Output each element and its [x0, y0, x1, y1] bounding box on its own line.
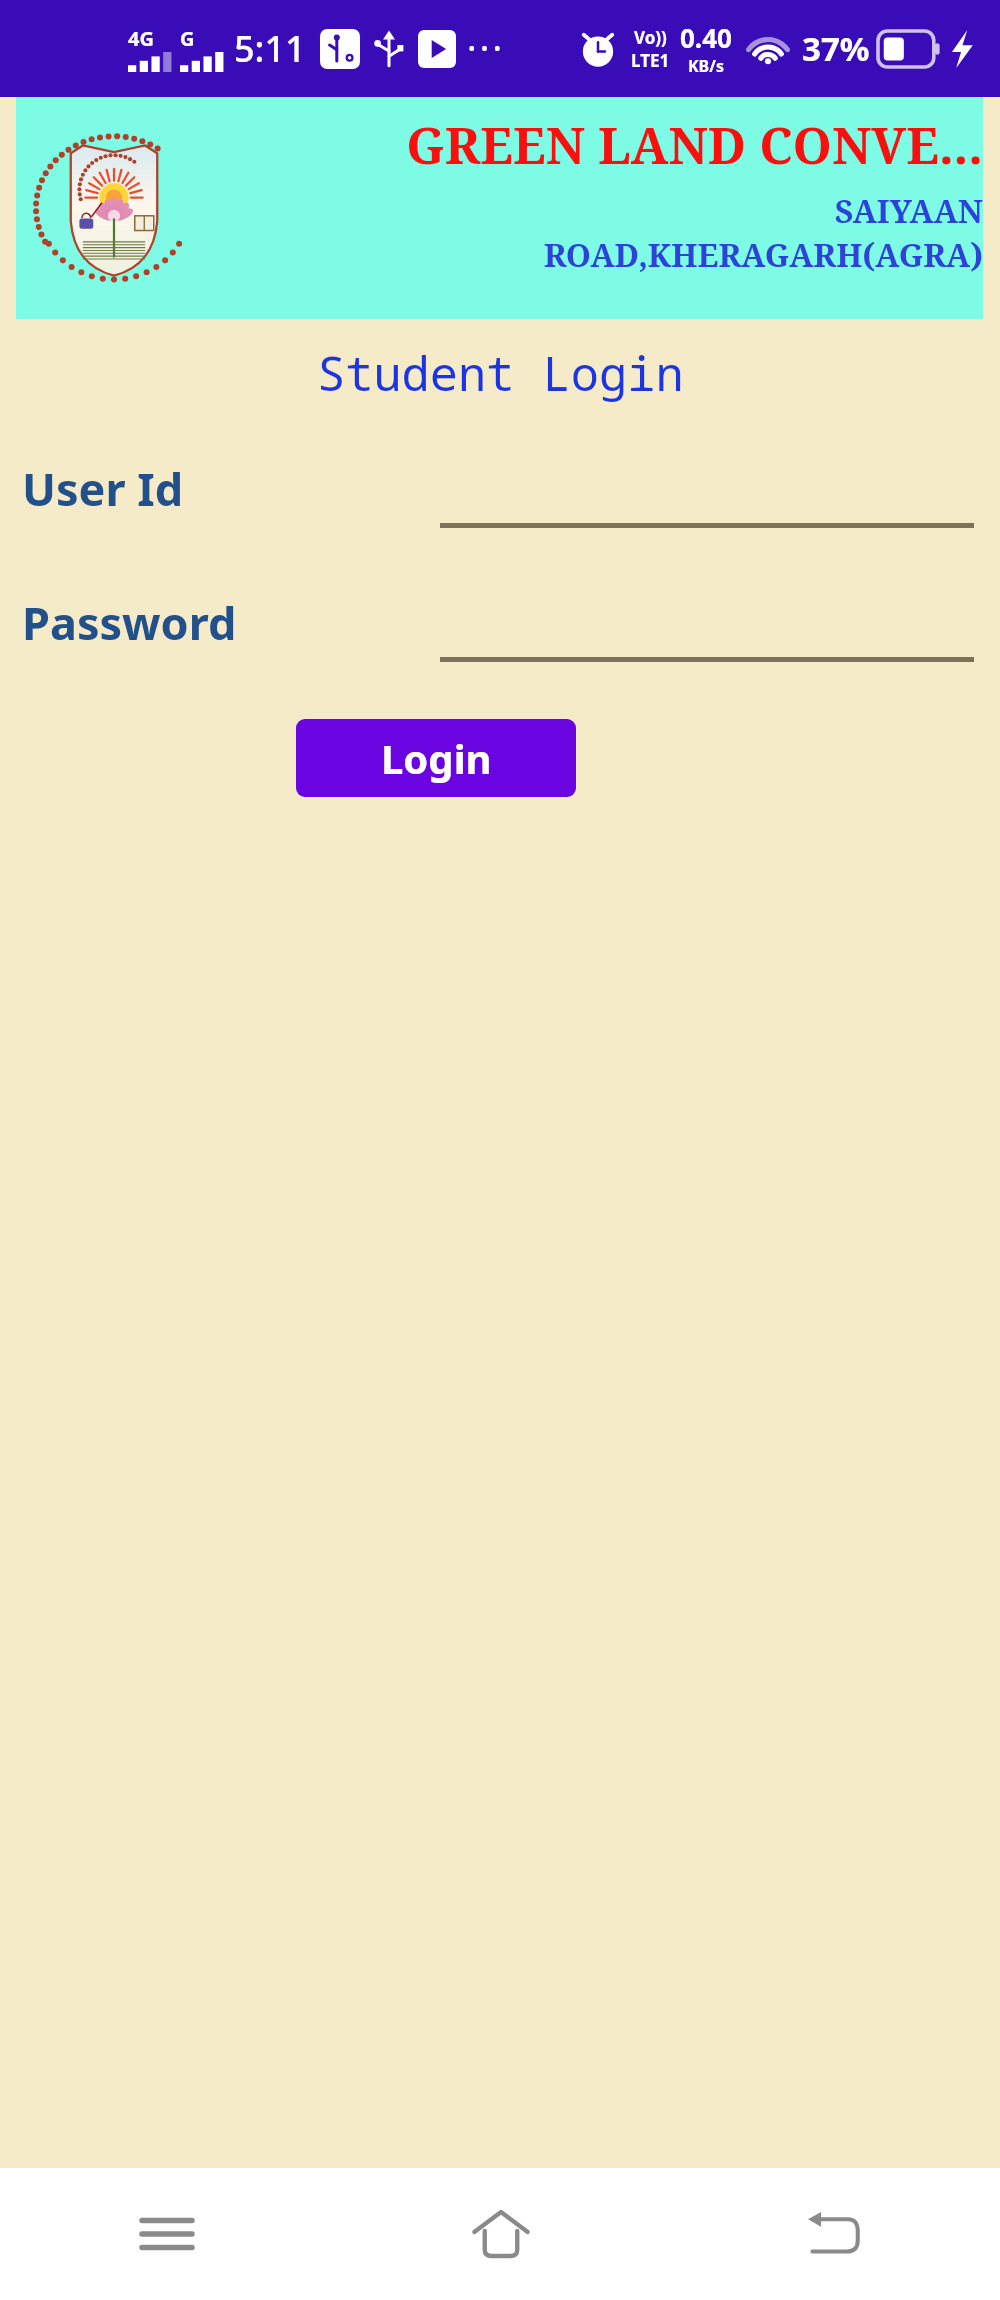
staticText: Password: [22, 592, 237, 653]
staticText: Vo)): [634, 26, 667, 49]
staticText: KB/s: [688, 55, 724, 77]
button[interactable]: [440, 448, 974, 528]
staticText: G: [180, 25, 195, 52]
staticText: LTE1: [631, 49, 670, 72]
staticText: SAIYAAN: [834, 189, 983, 233]
staticText: 37%: [802, 26, 870, 71]
staticText: Login: [381, 731, 492, 785]
staticText: ROAD,KHERAGARH(AGRA): [543, 233, 983, 277]
button[interactable]: Back: [667, 2168, 1000, 2300]
button[interactable]: Recent apps: [0, 2168, 334, 2300]
button[interactable]: Home: [334, 2168, 667, 2300]
staticText: Student Login: [317, 341, 684, 405]
staticText: 0.40: [680, 20, 732, 55]
staticText: • • •: [468, 35, 501, 62]
staticText: GREEN LAND CONVE...: [406, 111, 983, 179]
button[interactable]: Login: [296, 719, 576, 797]
staticText: 4G: [128, 25, 154, 52]
button[interactable]: [440, 582, 974, 662]
staticText: 5:11: [234, 24, 306, 73]
staticText: User Id: [22, 458, 184, 519]
